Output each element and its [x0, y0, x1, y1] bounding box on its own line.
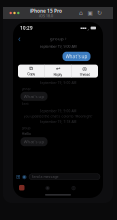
staticText: group: [21, 126, 30, 130]
staticText: September 19, 9:00 AM: [39, 109, 76, 113]
staticText: ◉: [45, 185, 50, 191]
staticText: What's up: [23, 139, 44, 145]
button[interactable]: Home: [79, 9, 83, 16]
staticText: group: [21, 86, 30, 91]
staticText: Copy: [27, 71, 35, 76]
button[interactable]: Apps: [16, 174, 20, 180]
staticText: ↩: [56, 65, 60, 72]
staticText: ‹: [18, 33, 21, 44]
staticText: ⌂: [79, 9, 83, 16]
staticText: ◎: [82, 65, 87, 72]
button[interactable]: group: [50, 35, 66, 42]
button[interactable]: Memoji: [71, 185, 76, 191]
staticText: What's up: [23, 93, 44, 99]
staticText: Sent: [21, 102, 28, 106]
staticText: iOS 18.0: [39, 14, 53, 18]
button[interactable]: Back: [16, 34, 23, 43]
staticText: Send a message: [31, 174, 58, 179]
staticText: you updated the chat's color to "Moonlig…: [23, 114, 92, 119]
button[interactable]: Photos: [45, 185, 50, 191]
staticText: group: [50, 36, 64, 41]
staticText: September 19, 9:00 AM: [39, 44, 76, 49]
staticText: ▣: [87, 10, 92, 16]
staticText: ◞: [87, 25, 89, 31]
staticText: ↻: [97, 9, 102, 16]
staticText: 10:29: [20, 25, 33, 31]
button[interactable]: ⧉: [18, 65, 44, 78]
button[interactable]: Rotate: [97, 9, 102, 16]
button[interactable]: ◎: [72, 65, 98, 78]
button[interactable]: App Store: [19, 185, 24, 190]
button[interactable]: Camera: [22, 174, 27, 180]
button[interactable]: ↩: [45, 65, 71, 78]
staticText: Reply: [53, 72, 62, 77]
button[interactable]: Send a message: [29, 174, 100, 180]
staticText: ◍: [71, 185, 76, 191]
staticText: September 19, 9:00 AM: [39, 81, 76, 85]
staticText: ◉: [22, 174, 27, 180]
staticText: ⊞: [16, 174, 20, 180]
button[interactable]: Screenshot: [87, 10, 92, 16]
staticText: ⧉: [29, 66, 33, 71]
staticText: September 19, 7:18 AM: [39, 119, 76, 124]
staticText: ▪▪▪: [80, 26, 86, 30]
staticText: Thread: [79, 72, 90, 77]
staticText: Hello: [21, 131, 30, 136]
staticText: What's up: [65, 53, 87, 59]
staticText: iPhone 15 Pro: [30, 8, 62, 14]
staticText: ›: [65, 35, 66, 42]
